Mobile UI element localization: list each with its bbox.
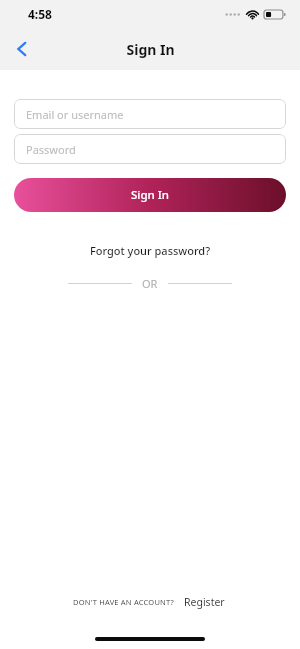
staticText: Sign In — [126, 40, 175, 59]
staticText: 4:58 — [28, 6, 52, 22]
button[interactable]: Sign In — [14, 178, 286, 212]
button[interactable]: Email or username — [14, 99, 286, 129]
staticText: Email or username — [26, 107, 124, 122]
button[interactable]: Password — [14, 134, 286, 164]
staticText: DON'T HAVE AN ACCOUNT? — [73, 597, 174, 607]
staticText: Password — [26, 142, 76, 157]
staticText: OR — [142, 276, 158, 291]
button[interactable]: Register — [182, 593, 227, 611]
staticText: Register — [184, 595, 225, 609]
staticText: Sign In — [131, 187, 170, 203]
button[interactable]: Forgot your password? — [0, 241, 300, 260]
button[interactable]: Back — [4, 31, 40, 67]
